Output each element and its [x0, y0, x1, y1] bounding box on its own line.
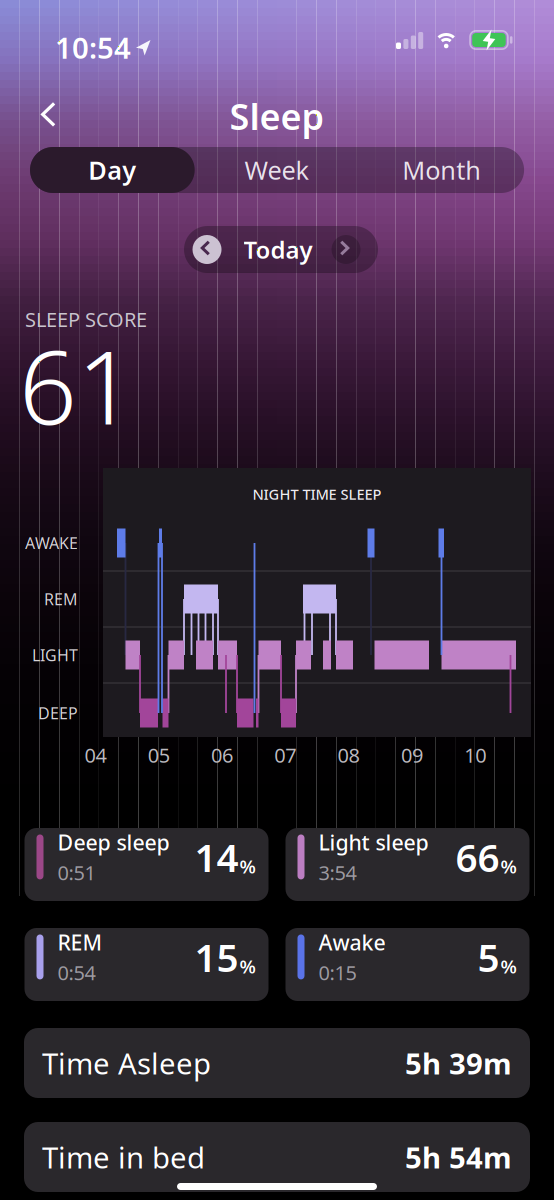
- staticText: Deep sleep: [57, 828, 169, 856]
- staticText: 0:54: [57, 959, 95, 986]
- button[interactable]: [35, 95, 65, 137]
- staticText: Day: [88, 153, 136, 187]
- staticText: Week: [244, 153, 309, 187]
- staticText: 14: [194, 831, 238, 883]
- staticText: REM: [44, 588, 78, 610]
- staticText: Light sleep: [318, 828, 428, 856]
- staticText: 08: [338, 742, 360, 768]
- staticText: 10:54: [55, 28, 131, 67]
- staticText: 10: [464, 742, 486, 768]
- staticText: Time in bed: [42, 1137, 205, 1176]
- staticText: 09: [401, 742, 423, 768]
- staticText: LIGHT: [32, 644, 78, 666]
- staticText: DEEP: [38, 702, 78, 724]
- staticText: 5: [477, 931, 499, 983]
- button[interactable]: [331, 235, 360, 264]
- button[interactable]: [192, 235, 221, 264]
- staticText: 0:51: [57, 859, 95, 886]
- staticText: NIGHT TIME SLEEP: [252, 484, 381, 504]
- staticText: 66: [455, 831, 499, 883]
- staticText: Sleep: [229, 92, 324, 140]
- staticText: 07: [274, 742, 296, 768]
- staticText: 61: [19, 318, 135, 453]
- staticText: Time Asleep: [42, 1043, 211, 1082]
- staticText: SLEEP SCORE: [25, 306, 147, 333]
- staticText: 04: [84, 742, 106, 768]
- staticText: 15: [194, 931, 238, 983]
- staticText: REM: [57, 928, 102, 956]
- staticText: AWAKE: [25, 532, 78, 554]
- staticText: %: [239, 854, 255, 879]
- staticText: 3:54: [318, 859, 356, 886]
- staticText: 5h 54m: [405, 1137, 512, 1176]
- staticText: Awake: [318, 928, 385, 956]
- staticText: Today: [243, 234, 312, 265]
- staticText: %: [239, 954, 255, 979]
- staticText: Month: [402, 153, 481, 187]
- staticText: 0:15: [318, 959, 356, 986]
- button[interactable]: Week: [195, 147, 359, 193]
- button[interactable]: Day: [30, 147, 195, 193]
- staticText: 05: [148, 742, 170, 768]
- button[interactable]: Month: [359, 147, 524, 193]
- staticText: %: [500, 854, 516, 879]
- staticText: 5h 39m: [405, 1043, 512, 1082]
- staticText: 06: [211, 742, 233, 768]
- staticText: %: [500, 954, 516, 979]
